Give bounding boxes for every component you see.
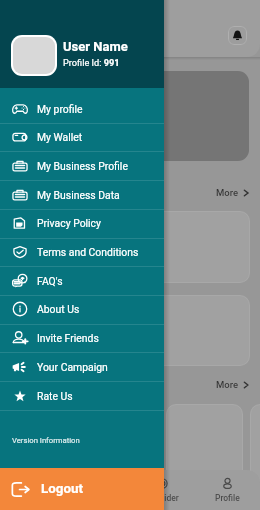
staticText: Provider (147, 493, 179, 503)
staticText: Profile Id: 991 (63, 57, 120, 68)
button[interactable]: Your Campaign (0, 353, 164, 381)
staticText: Privacy Policy (37, 217, 101, 229)
staticText: Terms and Conditions (37, 246, 139, 258)
button[interactable]: My Business Data (0, 181, 164, 209)
button[interactable]: Rate Us (0, 382, 164, 410)
button[interactable]: Privacy Policy (0, 209, 164, 237)
button[interactable] (11, 211, 250, 283)
staticText: About Us (37, 303, 80, 315)
button[interactable]: About Us (0, 295, 164, 323)
staticText: More (216, 379, 239, 390)
button[interactable]: Profile (195, 470, 260, 510)
staticText: Profile (215, 493, 240, 503)
button[interactable]: My Business Profile (0, 152, 164, 180)
staticText: My Wallet (37, 131, 83, 143)
staticText: Logout (41, 481, 84, 497)
button[interactable]: FAQ's (0, 267, 164, 295)
button[interactable] (166, 404, 243, 494)
button[interactable]: My profile (0, 95, 164, 123)
staticText: Rate Us (37, 390, 73, 402)
button[interactable]: Logout (0, 468, 164, 510)
button[interactable]: Invite Friends (0, 324, 164, 352)
staticText: FAQ's (37, 275, 63, 287)
staticText: My profile (37, 103, 83, 115)
button[interactable]: More (216, 185, 250, 200)
button[interactable] (12, 71, 249, 161)
staticText: User Name (63, 39, 128, 54)
staticText: My Business Data (37, 189, 120, 201)
button[interactable]: More (216, 377, 250, 392)
staticText: Your Campaign (37, 361, 108, 373)
button[interactable]: Provider (130, 470, 195, 510)
staticText: My Business Profile (37, 160, 128, 172)
staticText: Invite Friends (37, 332, 99, 344)
button[interactable]: Notifications (228, 26, 247, 45)
staticText: Home (21, 493, 44, 503)
button[interactable]: Terms and Conditions (0, 238, 164, 266)
button[interactable]: Booking (65, 470, 130, 510)
button[interactable]: My Wallet (0, 123, 164, 151)
staticText: More (216, 187, 239, 198)
button[interactable] (11, 295, 250, 366)
staticText: Version Information (12, 436, 80, 445)
button[interactable]: Home (0, 470, 65, 510)
